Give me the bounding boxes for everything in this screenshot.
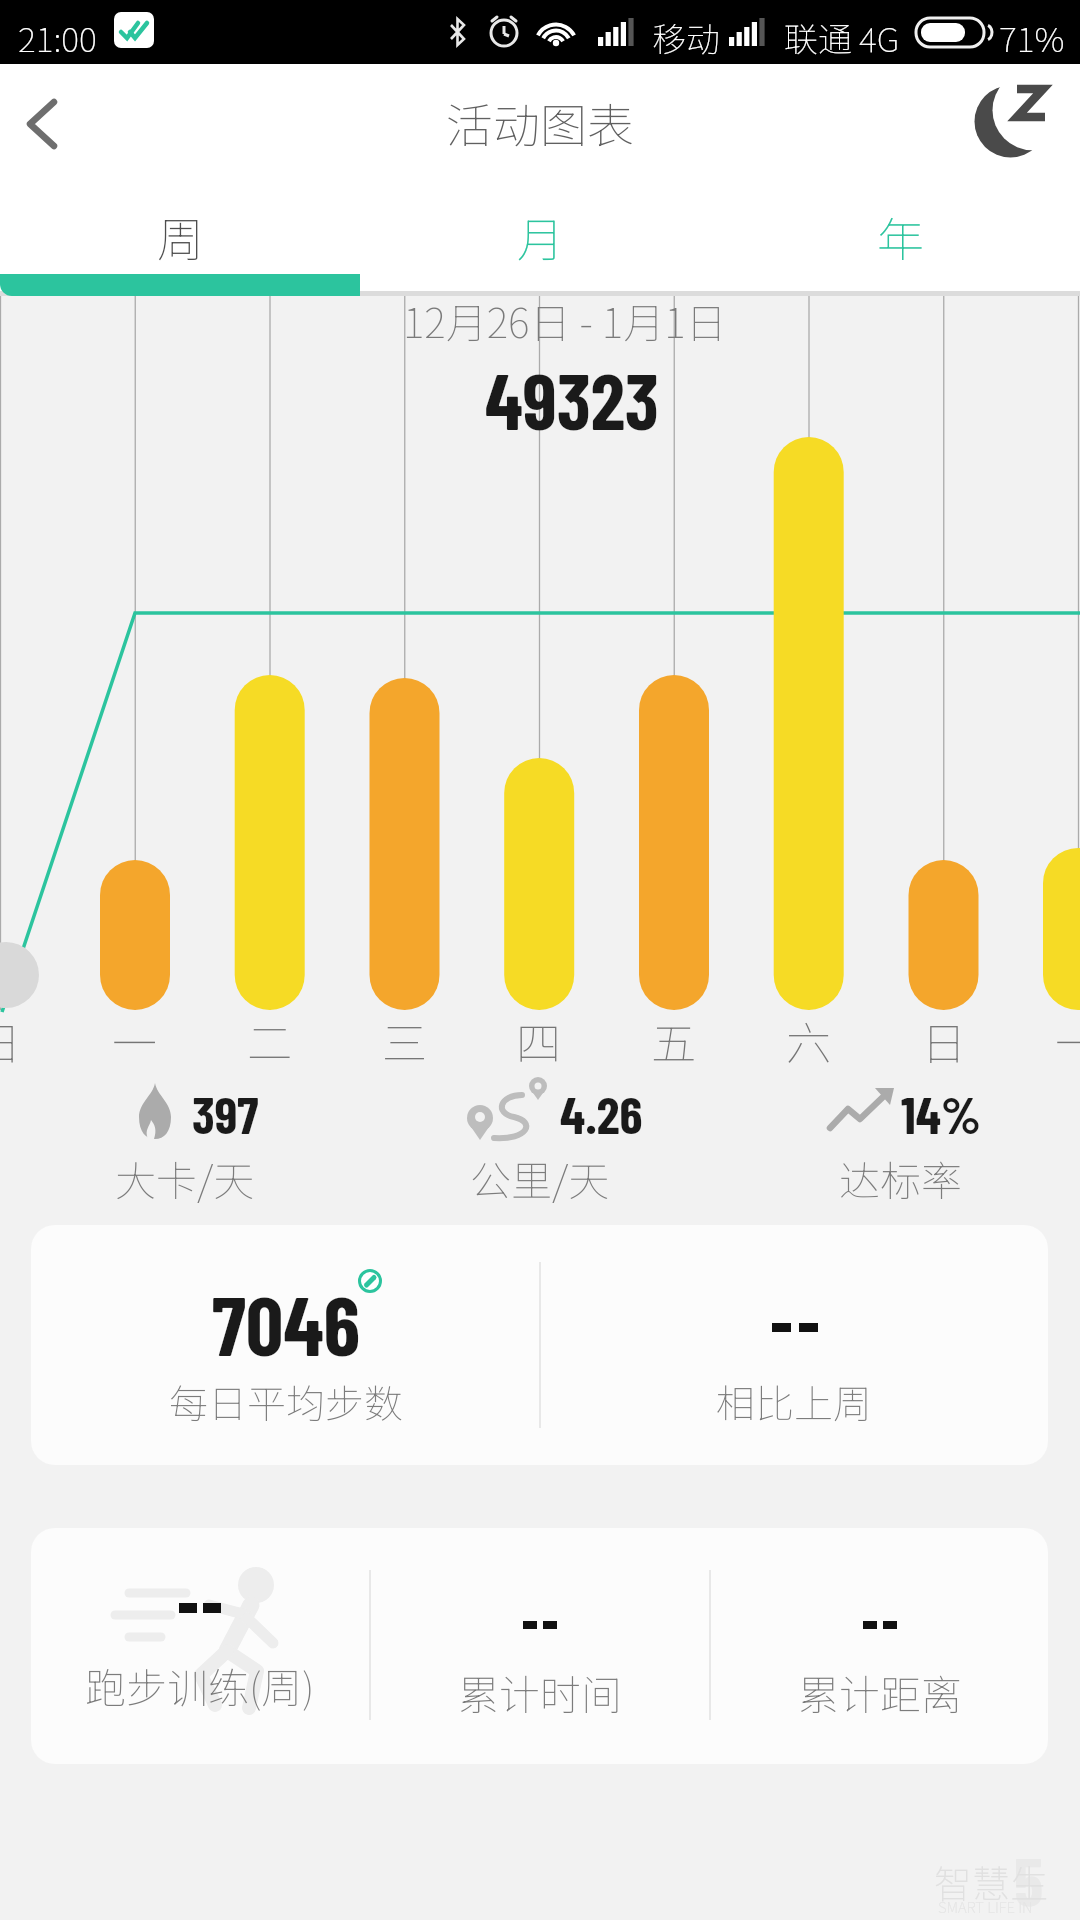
staticText: 4G xyxy=(859,13,900,62)
staticText: 年 xyxy=(877,202,924,270)
staticText: 7046 xyxy=(212,1273,361,1373)
staticText: 月 xyxy=(517,202,564,270)
staticText: 累计距离 xyxy=(798,1662,962,1721)
staticText: 4.26 xyxy=(560,1082,643,1144)
staticText: SMART LIFE IN xyxy=(938,1896,1033,1918)
staticText: 三 xyxy=(382,1008,428,1073)
button[interactable]: 年 xyxy=(720,180,1080,291)
staticText: 71% xyxy=(999,13,1065,62)
staticText: 每日平均步数 xyxy=(169,1373,404,1429)
staticText: 相比上周 xyxy=(716,1373,873,1429)
staticText: 397 xyxy=(192,1082,259,1144)
button[interactable] xyxy=(958,78,1050,170)
staticText: 周 xyxy=(157,202,204,270)
staticText: 跑步训练(周) xyxy=(85,1655,315,1714)
staticText: 一 xyxy=(112,1008,158,1073)
staticText: 21:00 xyxy=(18,13,97,62)
staticText: 五 xyxy=(651,1008,697,1073)
staticText: 累计时间 xyxy=(458,1662,622,1721)
button[interactable] xyxy=(16,96,72,152)
staticText: 大卡/天 xyxy=(115,1148,255,1207)
button[interactable]: 跑步训练(周) xyxy=(31,1528,1048,1764)
staticText: 四 xyxy=(516,1008,562,1073)
staticText: 二 xyxy=(247,1008,293,1073)
staticText: 六 xyxy=(786,1008,832,1073)
staticText: 活动图表 xyxy=(446,88,634,156)
staticText: 达标率 xyxy=(839,1148,962,1207)
staticText: 日 xyxy=(0,1008,22,1073)
staticText: 一 xyxy=(1055,1008,1080,1073)
staticText: 49323 xyxy=(485,352,659,446)
staticText: 14% xyxy=(901,1082,981,1144)
staticText: 日 xyxy=(921,1008,967,1073)
button[interactable]: 7046 xyxy=(31,1225,1048,1465)
staticText: 公里/天 xyxy=(470,1148,610,1207)
button[interactable]: 周 xyxy=(0,180,360,291)
staticText: 联通 xyxy=(784,13,852,62)
button[interactable]: 月 xyxy=(360,180,720,291)
staticText: 智慧生活 xyxy=(934,1854,1080,1920)
staticText: 5 xyxy=(1014,1840,1043,1919)
staticText: 12月26日 - 1月1日 xyxy=(403,290,727,349)
staticText: 移动 xyxy=(652,13,720,62)
